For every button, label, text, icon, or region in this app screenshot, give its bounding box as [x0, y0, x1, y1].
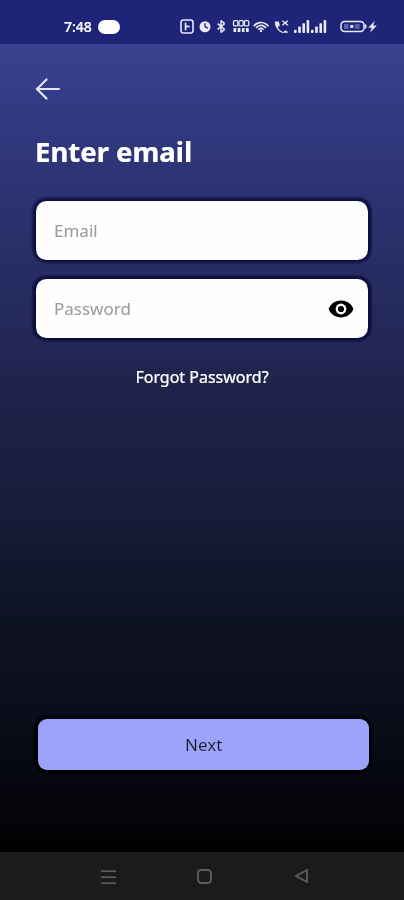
button[interactable]: Recents [84, 852, 132, 900]
staticText: Enter email [35, 133, 193, 170]
staticText: Forgot Password? [135, 366, 269, 388]
button[interactable]: Show password [321, 289, 361, 329]
button[interactable]: Next [38, 719, 369, 770]
button[interactable]: Password [36, 279, 368, 338]
button[interactable]: Forgot Password? [0, 364, 404, 390]
staticText: 7:48 [64, 17, 92, 36]
button[interactable]: Home [180, 852, 228, 900]
button[interactable]: Back [277, 852, 325, 900]
staticText: Email [54, 219, 98, 242]
staticText: Next [185, 733, 223, 756]
button[interactable]: Email [36, 201, 368, 260]
staticText: Password [54, 297, 131, 320]
button[interactable]: Back [26, 67, 70, 111]
